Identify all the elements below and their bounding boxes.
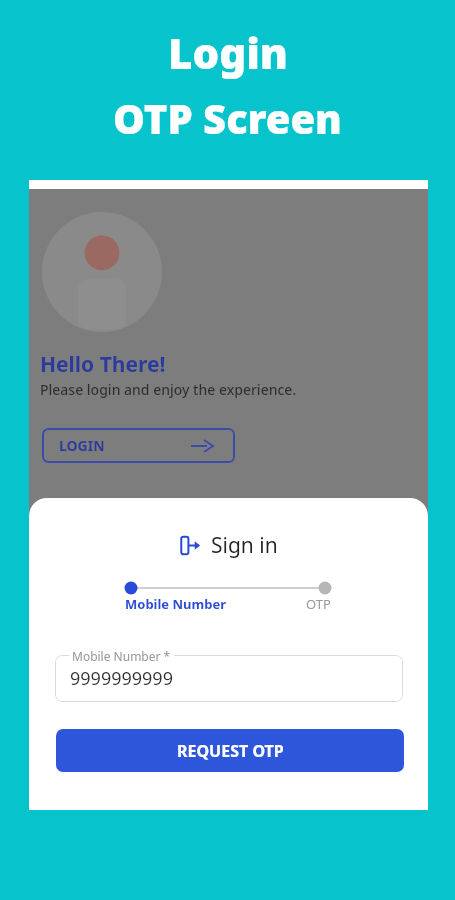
button[interactable]: LOGIN: [42, 428, 235, 463]
staticText: Please login and enjoy the experience.: [40, 380, 297, 399]
staticText: REQUEST OTP: [177, 740, 284, 762]
other: Sign in: [180, 535, 201, 556]
staticText: Hello There!: [40, 350, 166, 379]
staticText: LOGIN: [59, 436, 105, 455]
staticText: Mobile Number: [125, 595, 226, 613]
staticText: Login: [168, 24, 288, 81]
staticText: Sign in: [211, 531, 278, 560]
staticText: 9999999999: [70, 666, 173, 691]
button[interactable]: REQUEST OTP: [56, 729, 404, 772]
staticText: OTP: [306, 595, 331, 613]
button[interactable]: 9999999999: [55, 655, 403, 702]
staticText: OTP Screen: [113, 91, 342, 145]
staticText: Mobile Number *: [72, 648, 171, 664]
